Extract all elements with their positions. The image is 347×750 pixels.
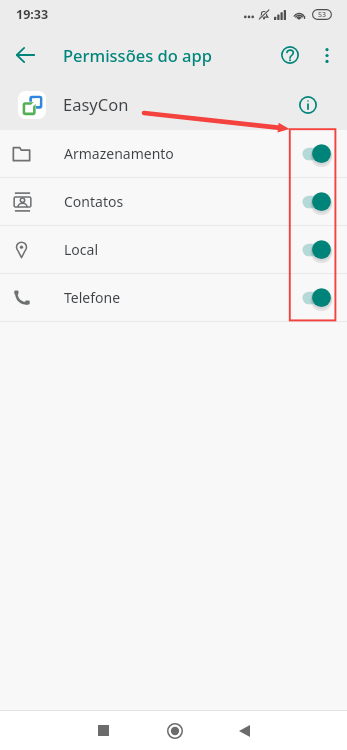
button[interactable]: Informações do app (286, 83, 330, 127)
button[interactable]: Voltar (5, 35, 45, 75)
button[interactable]: Armazenamento (0, 130, 347, 177)
button[interactable]: Ajuda (270, 35, 310, 75)
button[interactable]: EasyCon (0, 80, 347, 130)
button[interactable]: Voltar (216, 711, 272, 750)
staticText: Local (64, 240, 98, 259)
button[interactable]: Mais opções (307, 35, 347, 75)
staticText: Permissões do app (63, 44, 212, 66)
button[interactable]: Início (147, 711, 203, 750)
staticText: Telefone (64, 288, 121, 307)
button[interactable]: Telefone (0, 274, 347, 321)
staticText: Contatos (64, 192, 124, 211)
staticText: EasyCon (63, 93, 129, 115)
button[interactable]: Local (0, 226, 347, 273)
staticText: 53 (318, 10, 327, 20)
button[interactable]: Ativar Armazenamento (295, 133, 337, 175)
staticText: 19:33 (16, 6, 49, 23)
button[interactable]: Ativar Telefone (295, 277, 337, 319)
button[interactable]: Ativar Contatos (295, 181, 337, 223)
button[interactable]: Recentes (75, 711, 131, 750)
button[interactable]: Contatos (0, 178, 347, 225)
staticText: Armazenamento (64, 144, 174, 163)
button[interactable]: Ativar Local (295, 229, 337, 271)
